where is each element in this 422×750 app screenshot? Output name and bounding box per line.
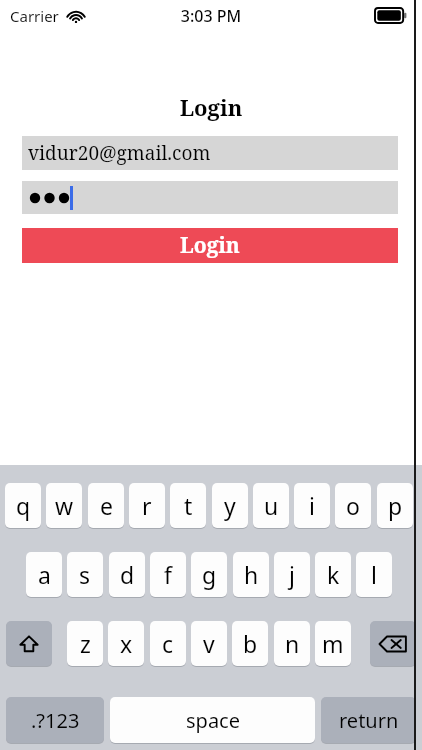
button[interactable]: b (232, 621, 268, 666)
button[interactable]: q (5, 483, 41, 528)
button[interactable]: p (377, 483, 413, 528)
button[interactable]: t (170, 483, 206, 528)
button[interactable]: x (108, 621, 144, 666)
button[interactable]: i (294, 483, 330, 528)
staticText: v (203, 628, 215, 659)
button[interactable]: space (110, 697, 315, 743)
button[interactable]: r (129, 483, 165, 528)
staticText: 3:03 PM (0, 5, 422, 27)
staticText: a (38, 559, 51, 590)
button[interactable]: return (321, 697, 416, 743)
button[interactable]: g (191, 552, 227, 597)
staticText: o (346, 490, 360, 521)
staticText: y (224, 490, 236, 521)
staticText: j (289, 559, 295, 590)
staticText: Carrier (10, 6, 59, 26)
button[interactable]: c (150, 621, 186, 666)
button[interactable]: d (109, 552, 145, 597)
staticText: l (371, 559, 377, 590)
staticText: z (80, 628, 91, 659)
button[interactable]: z (67, 621, 103, 666)
button[interactable]: .?123 (6, 697, 104, 743)
staticText: Login (0, 92, 422, 122)
staticText: r (142, 490, 152, 521)
button[interactable]: Login (22, 228, 398, 263)
staticText: i (309, 490, 315, 521)
staticText: b (243, 628, 258, 659)
button[interactable]: a (26, 552, 62, 597)
staticText: vidur20@gmail.com (28, 140, 211, 166)
staticText: t (184, 490, 193, 521)
staticText: c (162, 628, 174, 659)
staticText: q (16, 490, 31, 521)
staticText: .?123 (31, 707, 80, 734)
staticText: p (388, 490, 403, 521)
button[interactable]: y (212, 483, 248, 528)
staticText: s (79, 559, 91, 590)
staticText: x (120, 628, 133, 659)
button[interactable]: h (233, 552, 269, 597)
button[interactable]: o (335, 483, 371, 528)
button[interactable]: s (67, 552, 103, 597)
staticText: k (327, 559, 340, 590)
staticText: Login (180, 231, 240, 260)
button[interactable]: j (274, 552, 310, 597)
button[interactable]: e (88, 483, 124, 528)
staticText: d (120, 559, 135, 590)
staticText: u (264, 490, 279, 521)
button[interactable]: l (356, 552, 392, 597)
button[interactable]: k (315, 552, 351, 597)
button[interactable] (22, 181, 398, 214)
staticText: f (164, 559, 172, 590)
staticText: m (322, 628, 344, 659)
button[interactable]: m (315, 621, 351, 666)
button[interactable]: Backspace (370, 621, 416, 666)
button[interactable]: vidur20@gmail.com (22, 136, 398, 170)
staticText: e (100, 490, 113, 521)
staticText: h (244, 559, 259, 590)
staticText: return (339, 707, 399, 734)
button[interactable]: v (191, 621, 227, 666)
button[interactable]: u (253, 483, 289, 528)
staticText: w (55, 490, 74, 521)
staticText: g (202, 559, 217, 590)
button[interactable]: f (150, 552, 186, 597)
button[interactable]: w (46, 483, 82, 528)
button[interactable]: Shift (6, 621, 52, 666)
staticText: space (186, 707, 240, 734)
staticText: n (285, 628, 300, 659)
button[interactable]: n (274, 621, 310, 666)
